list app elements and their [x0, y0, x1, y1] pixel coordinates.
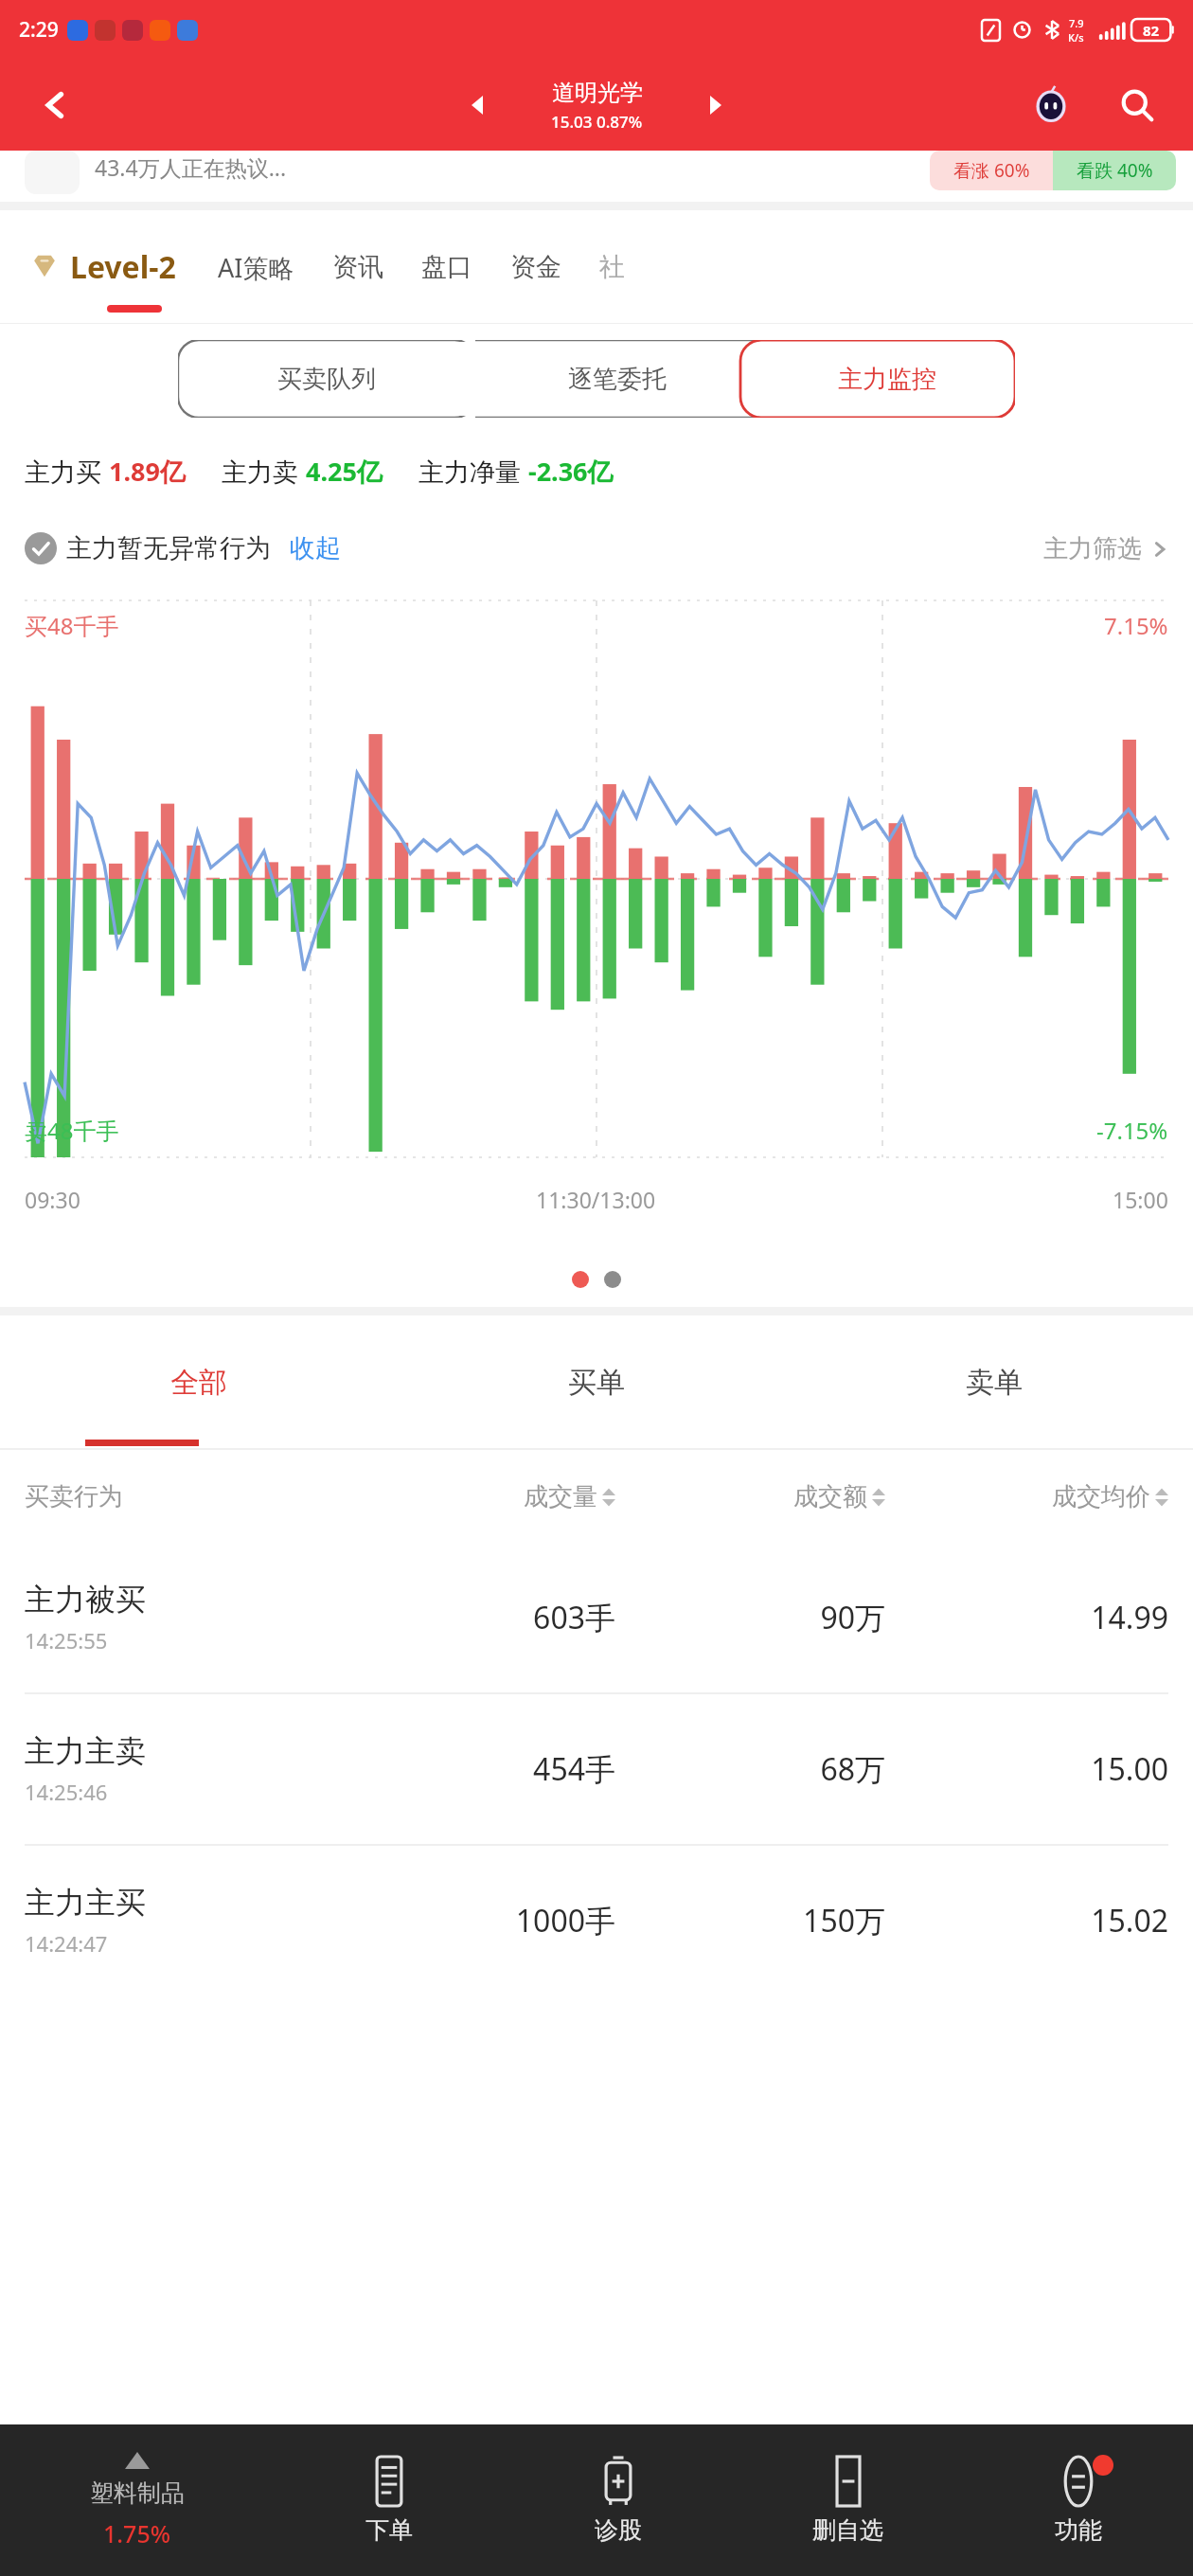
staticText: 150万: [615, 1900, 885, 1941]
staticText: 买卖行为: [25, 1481, 347, 1512]
button[interactable]: 资讯: [332, 251, 383, 283]
staticText: 买卖队列: [277, 364, 376, 395]
staticText: 14:24:47: [25, 1929, 108, 1958]
staticText: 90万: [615, 1597, 885, 1638]
button[interactable]: 资金: [510, 251, 561, 283]
staticText: 塑料制品: [90, 2478, 185, 2508]
staticText: 09:30: [25, 1185, 80, 1214]
staticText: 15.02: [885, 1900, 1168, 1941]
button[interactable]: 成交均价: [885, 1481, 1168, 1512]
button[interactable]: AI策略: [218, 250, 294, 285]
staticText: 主力被买: [25, 1581, 146, 1619]
staticText: 买单: [568, 1365, 625, 1401]
button[interactable]: 主力监控: [759, 340, 1015, 418]
button[interactable]: 盘口: [421, 251, 472, 283]
staticText: 11:30/13:00: [536, 1185, 656, 1214]
staticText: 主力暂无异常行为: [66, 532, 271, 564]
staticText: -2.36亿: [528, 454, 614, 489]
staticText: 主力主买: [25, 1884, 146, 1922]
staticText: 1000手: [347, 1900, 615, 1941]
staticText: 卖48千手: [25, 1115, 119, 1146]
staticText: 诊股: [595, 2515, 642, 2545]
button[interactable]: 买卖队列: [178, 340, 475, 418]
staticText: 主力卖: [222, 454, 306, 489]
staticText: 主力筛选: [1043, 533, 1142, 564]
staticText: 买48千手: [25, 610, 119, 641]
staticText: 603手: [347, 1597, 615, 1638]
staticText: 主力净量: [418, 454, 528, 489]
staticText: 主力主卖: [25, 1732, 146, 1770]
button[interactable]: 收起: [290, 532, 341, 564]
button[interactable]: AI assistant: [1024, 79, 1077, 132]
button[interactable]: 主力主买: [25, 1846, 1168, 1995]
staticText: 82: [1143, 21, 1160, 40]
button[interactable]: 主力筛选: [1043, 533, 1168, 564]
staticText: 1.89亿: [109, 454, 186, 489]
staticText: 4.25亿: [306, 454, 383, 489]
button[interactable]: Search: [1110, 78, 1165, 133]
staticText: 看涨 60%: [953, 158, 1030, 183]
button[interactable]: 社: [599, 251, 625, 283]
staticText: 道明光学: [552, 79, 643, 107]
staticText: 主力监控: [838, 364, 936, 395]
button[interactable]: 买单: [398, 1315, 795, 1450]
staticText: 15:00: [1113, 1185, 1168, 1214]
staticText: 14:25:46: [25, 1778, 108, 1806]
staticText: K/s: [1068, 30, 1084, 45]
button[interactable]: 全部: [0, 1315, 398, 1450]
staticText: 68万: [615, 1748, 885, 1790]
staticText: 成交额: [793, 1481, 867, 1512]
button[interactable]: 功能: [963, 2424, 1193, 2576]
staticText: 7.9: [1069, 16, 1084, 30]
button[interactable]: 卖单: [795, 1315, 1193, 1450]
button[interactable]: 塑料制品: [0, 2424, 275, 2576]
staticText: 看跌 40%: [1077, 158, 1153, 183]
staticText: 下单: [365, 2515, 413, 2545]
staticText: 43.4万人正在热议...: [95, 152, 287, 182]
staticText: Level-2: [70, 246, 176, 288]
staticText: 1.75%: [103, 2517, 171, 2549]
button[interactable]: 主力被买: [25, 1543, 1168, 1692]
button[interactable]: 主力主卖: [25, 1694, 1168, 1844]
button[interactable]: 逐笔委托: [475, 340, 759, 418]
staticText: 功能: [1055, 2515, 1102, 2545]
button[interactable]: 成交额: [615, 1481, 885, 1512]
staticText: 14:25:55: [25, 1626, 108, 1655]
staticText: 15.00: [885, 1748, 1168, 1790]
button[interactable]: 43.4万人正在热议...: [25, 151, 1176, 202]
staticText: 成交均价: [1052, 1481, 1150, 1512]
staticText: 2:29: [19, 16, 59, 44]
button[interactable]: 删自选: [733, 2424, 963, 2576]
staticText: -7.15%: [1096, 1115, 1168, 1146]
staticText: 删自选: [812, 2515, 883, 2545]
staticText: 14.99: [885, 1597, 1168, 1638]
button[interactable]: 成交量: [347, 1481, 615, 1512]
staticText: 收起: [290, 532, 341, 564]
staticText: 逐笔委托: [568, 364, 667, 395]
staticText: 卖单: [966, 1365, 1023, 1401]
button[interactable]: Next stock: [690, 80, 739, 130]
staticText: 7.15%: [1104, 610, 1168, 641]
staticText: 454手: [347, 1748, 615, 1790]
button[interactable]: 诊股: [504, 2424, 733, 2576]
button[interactable]: 下单: [275, 2424, 504, 2576]
button[interactable]: Back: [28, 78, 83, 133]
staticText: 主力买: [25, 454, 109, 489]
staticText: 全部: [170, 1365, 227, 1401]
button[interactable]: Level-2: [28, 246, 176, 288]
button[interactable]: Previous stock: [454, 80, 503, 130]
staticText: 成交量: [524, 1481, 597, 1512]
staticText: 15.03 0.87%: [551, 111, 643, 133]
